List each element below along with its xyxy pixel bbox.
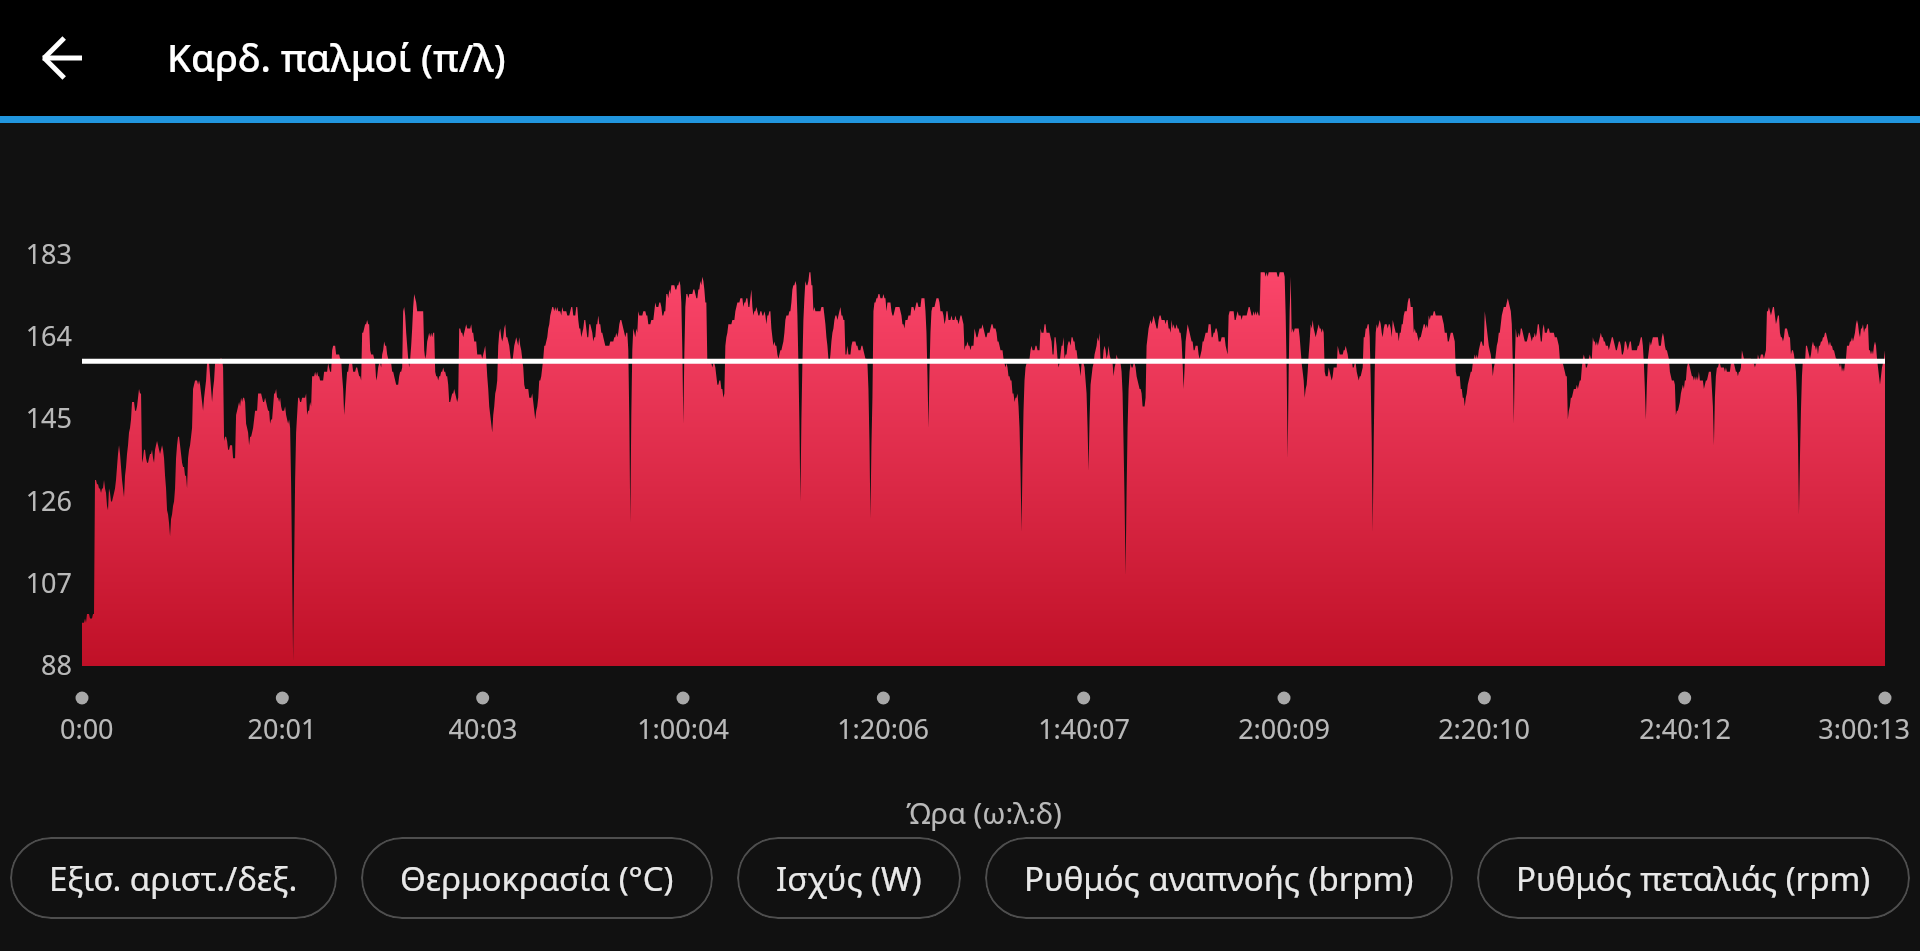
button[interactable]: Ισχύς (W) bbox=[737, 837, 961, 919]
staticText: 40:03 bbox=[353, 710, 613, 747]
staticText: 20:01 bbox=[152, 710, 412, 747]
staticText: Καρδ. παλμοί (π/λ) bbox=[167, 31, 506, 83]
staticText: Ρυθμός αναπνοής (brpm) bbox=[1024, 856, 1414, 901]
staticText: 0:00 bbox=[60, 710, 320, 747]
staticText: Ισχύς (W) bbox=[776, 856, 922, 901]
staticText: 1:00:04 bbox=[553, 710, 813, 747]
staticText: 1:40:07 bbox=[954, 710, 1214, 747]
staticText: Ρυθμός πεταλιάς (rpm) bbox=[1516, 856, 1871, 901]
button[interactable]: Ρυθμός αναπνοής (brpm) bbox=[985, 837, 1453, 919]
staticText: Ώρα (ω:λ:δ) bbox=[84, 793, 1884, 832]
staticText: 183 bbox=[0, 235, 72, 272]
staticText: Εξισ. αριστ./δεξ. bbox=[49, 856, 298, 901]
staticText: 88 bbox=[0, 646, 72, 683]
button[interactable]: Εξισ. αριστ./δεξ. bbox=[10, 837, 337, 919]
button[interactable]: Θερμοκρασία (°C) bbox=[361, 837, 713, 919]
staticText: 126 bbox=[0, 482, 72, 519]
staticText: 1:20:06 bbox=[753, 710, 1013, 747]
staticText: Θερμοκρασία (°C) bbox=[400, 856, 674, 901]
staticText: 2:20:10 bbox=[1354, 710, 1614, 747]
button[interactable]: Ρυθμός πεταλιάς (rpm) bbox=[1477, 837, 1910, 919]
staticText: 2:40:12 bbox=[1555, 710, 1815, 747]
staticText: 107 bbox=[0, 564, 72, 601]
staticText: 145 bbox=[0, 399, 72, 436]
button[interactable]: Back bbox=[22, 18, 102, 98]
staticText: 3:00:13 bbox=[1650, 710, 1910, 747]
staticText: 164 bbox=[0, 317, 72, 354]
staticText: 2:00:09 bbox=[1154, 710, 1414, 747]
